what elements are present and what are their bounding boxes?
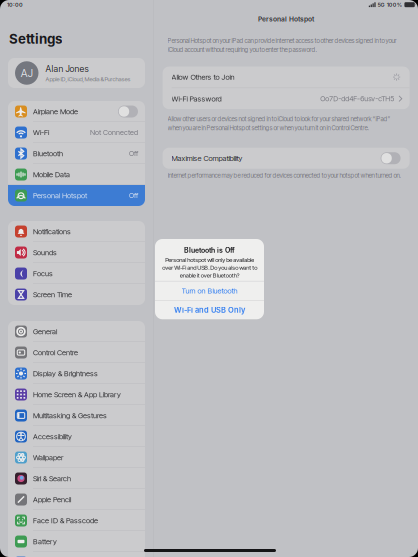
button[interactable]: Siri & Search bbox=[8, 468, 145, 489]
button[interactable]: Turn on Bluetooth bbox=[155, 281, 264, 300]
staticText: Apple ID, iCloud, Media & Purchases bbox=[45, 75, 130, 83]
staticText: Not Connected bbox=[90, 128, 138, 137]
button[interactable]: Mobile Data bbox=[8, 164, 145, 185]
button[interactable]: Display & Brightness bbox=[8, 363, 145, 384]
staticText: Personal Hotspot bbox=[33, 191, 87, 200]
staticText: Wi-Fi and USB Only bbox=[174, 305, 245, 314]
staticText: Personal Hotspot bbox=[258, 15, 314, 23]
button[interactable]: Multitasking & Gestures bbox=[8, 405, 145, 426]
button[interactable]: Privacy & Security bbox=[8, 552, 145, 557]
staticText: Battery bbox=[33, 537, 57, 546]
staticText: Airplane Mode bbox=[33, 107, 78, 116]
staticText: General bbox=[33, 327, 57, 336]
staticText: Control Centre bbox=[33, 348, 78, 357]
staticText: Focus bbox=[33, 269, 53, 278]
staticText: AJ bbox=[21, 66, 33, 79]
staticText: Siri & Search bbox=[33, 474, 71, 483]
button[interactable]: Screen Time bbox=[8, 284, 145, 305]
button[interactable]: Face ID & Passcode bbox=[8, 510, 145, 531]
staticText: Bluetooth is Off bbox=[184, 246, 235, 254]
button[interactable]: General bbox=[8, 321, 145, 342]
button[interactable]: Wallpaper bbox=[8, 447, 145, 468]
button[interactable]: Apple Pencil bbox=[8, 489, 145, 510]
staticText: 10:00 bbox=[7, 1, 23, 8]
staticText: Personal hotspot will only be available … bbox=[162, 256, 257, 279]
button[interactable]: Control Centre bbox=[8, 342, 145, 363]
button[interactable]: Allow Others to Join bbox=[163, 67, 410, 88]
button[interactable]: Notifications bbox=[8, 221, 145, 242]
staticText: Wi-Fi bbox=[33, 128, 49, 137]
button[interactable]: Accessibility bbox=[8, 426, 145, 447]
staticText: Multitasking & Gestures bbox=[33, 411, 107, 420]
staticText: Screen Time bbox=[33, 290, 72, 299]
button[interactable]: Airplane Mode bbox=[8, 101, 145, 122]
button[interactable]: Wi-Fi and USB Only bbox=[155, 301, 264, 319]
staticText: Allow Others to Join bbox=[172, 72, 235, 81]
staticText: Face ID & Passcode bbox=[33, 516, 98, 525]
button[interactable]: Home Screen & App Library bbox=[8, 384, 145, 405]
staticText: Accessibility bbox=[33, 432, 72, 441]
staticText: 5G bbox=[378, 1, 385, 8]
staticText: Wi-Fi Password bbox=[172, 94, 222, 103]
staticText: Alan Jones bbox=[45, 63, 88, 74]
staticText: Display & Brightness bbox=[33, 369, 98, 378]
staticText: Off bbox=[129, 191, 138, 200]
staticText: Turn on Bluetooth bbox=[181, 286, 237, 295]
staticText: Off bbox=[129, 149, 138, 158]
staticText: Oo7D-dd4F-6usv-cTH5 bbox=[320, 94, 394, 103]
staticText: Maximise Compatibility bbox=[172, 154, 243, 163]
button[interactable]: Battery bbox=[8, 531, 145, 552]
staticText: Settings bbox=[9, 31, 62, 47]
staticText: Wallpaper bbox=[33, 453, 63, 462]
button[interactable]: Bluetooth bbox=[8, 143, 145, 164]
button[interactable]: Wi-Fi Password bbox=[163, 88, 410, 109]
staticText: Notifications bbox=[33, 227, 71, 236]
button[interactable]: Personal Hotspot bbox=[8, 185, 145, 206]
button[interactable]: Wi-Fi bbox=[8, 122, 145, 143]
staticText: Sounds bbox=[33, 248, 57, 257]
staticText: Personal Hotspot on your iPad can provid… bbox=[168, 37, 397, 54]
button[interactable]: AJ bbox=[8, 58, 145, 88]
staticText: Internet performance may be reduced for … bbox=[168, 172, 401, 179]
button[interactable]: Focus bbox=[8, 263, 145, 284]
staticText: Mobile Data bbox=[33, 170, 70, 179]
button[interactable]: Sounds bbox=[8, 242, 145, 263]
staticText: Home Screen & App Library bbox=[33, 390, 121, 399]
staticText: Allow other users or devices not signed … bbox=[168, 115, 391, 132]
staticText: 100% bbox=[387, 1, 402, 8]
staticText: Apple Pencil bbox=[33, 495, 71, 504]
staticText: Bluetooth bbox=[33, 149, 63, 158]
